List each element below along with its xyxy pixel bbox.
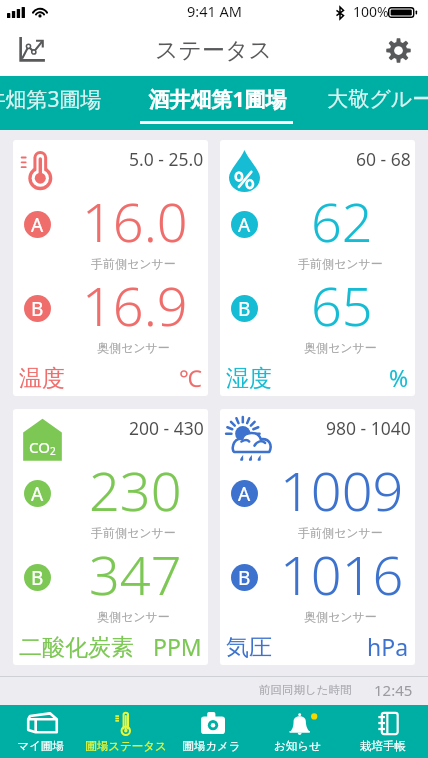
- button[interactable]: Settings: [372, 24, 424, 76]
- staticText: 酒井畑第1圃場: [148, 85, 287, 114]
- button[interactable]: 栽培手帳: [342, 705, 428, 758]
- staticText: PPM: [153, 631, 202, 662]
- staticText: 栽培手帳: [360, 739, 406, 753]
- staticText: A: [238, 481, 251, 507]
- staticText: 奥側センサー: [97, 340, 170, 355]
- staticText: 奥側センサー: [304, 340, 377, 355]
- staticText: 奥側センサー: [304, 609, 377, 624]
- button[interactable]: Graph: [5, 24, 57, 76]
- button[interactable]: 5.0 - 25.0: [13, 140, 208, 396]
- staticText: 二酸化炭素: [19, 633, 134, 662]
- button[interactable]: マイ圃場: [0, 705, 85, 758]
- staticText: B: [238, 565, 251, 591]
- staticText: 圃場ステータス: [85, 739, 167, 753]
- staticText: ℃: [179, 362, 202, 393]
- button[interactable]: 圃場ステータス: [85, 705, 170, 758]
- staticText: B: [238, 296, 251, 322]
- staticText: お知らせ: [274, 739, 321, 753]
- staticText: %: [389, 362, 409, 393]
- staticText: 1016: [280, 537, 404, 611]
- staticText: マイ圃場: [17, 739, 64, 753]
- staticText: 大敬グループ: [327, 86, 428, 112]
- staticText: 16.9: [82, 268, 188, 342]
- staticText: 9:41 AM: [187, 1, 242, 21]
- staticText: 奥側センサー: [97, 609, 170, 624]
- staticText: 2: [50, 444, 56, 458]
- staticText: 16.0: [82, 184, 188, 258]
- staticText: 手前側センサー: [91, 525, 176, 540]
- staticText: 347: [89, 537, 182, 611]
- staticText: 65: [311, 268, 373, 342]
- staticText: B: [31, 296, 44, 322]
- staticText: 1009: [280, 453, 404, 527]
- staticText: A: [238, 212, 251, 238]
- button[interactable]: お知らせ: [256, 705, 342, 758]
- staticText: 湿度: [226, 364, 272, 393]
- staticText: 手前側センサー: [91, 256, 176, 271]
- staticText: A: [31, 212, 44, 238]
- staticText: ステータス: [155, 36, 273, 65]
- staticText: 230: [89, 453, 182, 527]
- staticText: A: [31, 481, 44, 507]
- button[interactable]: 60 - 68: [220, 140, 415, 396]
- staticText: 5.0 - 25.0: [129, 147, 204, 171]
- staticText: 圃場カメラ: [182, 739, 241, 753]
- staticText: 手前側センサー: [298, 256, 383, 271]
- staticText: 200 - 430: [129, 416, 204, 440]
- staticText: 980 - 1040: [326, 416, 411, 440]
- staticText: 丼畑第3圃場: [0, 85, 102, 114]
- staticText: B: [31, 565, 44, 591]
- button[interactable]: 980 - 1040: [220, 409, 415, 665]
- button[interactable]: 200 - 430: [13, 409, 208, 665]
- staticText: 60 - 68: [356, 147, 411, 171]
- staticText: 温度: [19, 364, 65, 393]
- staticText: CO: [29, 437, 50, 457]
- button[interactable]: 圃場カメラ: [170, 705, 256, 758]
- button[interactable]: 大敬グループ: [304, 76, 428, 130]
- staticText: 62: [311, 184, 373, 258]
- staticText: 12:45: [374, 680, 413, 700]
- button[interactable]: 酒井畑第1圃場: [130, 76, 304, 130]
- staticText: 前回同期した時間: [259, 683, 352, 697]
- staticText: hPa: [367, 631, 409, 662]
- staticText: 気圧: [226, 633, 272, 662]
- button[interactable]: 丼畑第3圃場: [0, 76, 130, 130]
- staticText: 100%: [353, 2, 389, 21]
- staticText: 手前側センサー: [298, 525, 383, 540]
